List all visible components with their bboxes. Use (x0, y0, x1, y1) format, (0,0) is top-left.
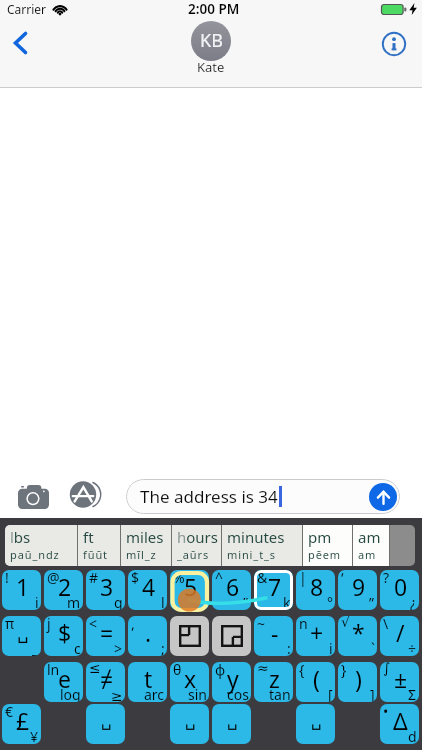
staticText: √ (341, 616, 350, 630)
staticText: ␣ (227, 710, 238, 730)
staticText: cos (227, 685, 249, 702)
staticText: ␣ (17, 622, 29, 643)
staticText: tan (269, 685, 291, 702)
button[interactable]: ~ (254, 616, 293, 656)
button[interactable]: √ (338, 616, 377, 656)
button[interactable]: Camera (18, 485, 49, 509)
staticText: n (299, 616, 308, 633)
staticText: ” (243, 593, 249, 610)
staticText: # (89, 570, 99, 587)
button[interactable]: % (170, 570, 209, 610)
staticText: Σ (408, 685, 417, 702)
button[interactable]: ‘ (338, 570, 377, 610)
staticText: 7 (268, 571, 282, 602)
button[interactable]: ␣ (212, 704, 251, 744)
button[interactable]: The address is 34 (126, 479, 400, 514)
staticText: x (184, 663, 197, 694)
button[interactable]: ^ (212, 570, 251, 610)
button[interactable]: ? (380, 570, 419, 610)
button[interactable]: @ (44, 570, 83, 610)
button[interactable]: Apps (62, 476, 110, 512)
button[interactable]: | (296, 570, 335, 610)
button[interactable]: # (86, 570, 125, 610)
staticText: ‘ (341, 570, 344, 587)
staticText: 2 (58, 571, 72, 602)
staticText: - (271, 617, 279, 648)
button[interactable]: Send (369, 483, 397, 511)
staticText: ÷ (408, 639, 417, 656)
staticText: = (100, 617, 114, 648)
staticText: ~ (257, 616, 266, 633)
staticText: t (144, 663, 153, 694)
staticText: 5 (184, 571, 198, 602)
staticText: z (269, 663, 280, 694)
button[interactable]: minutes (222, 525, 302, 566)
button[interactable]: • (380, 704, 419, 744)
button[interactable]: am (353, 525, 389, 566)
button[interactable]: < (86, 616, 125, 656)
staticText: ≈ (257, 662, 269, 676)
staticText: mini_t_s (227, 547, 276, 562)
button[interactable]: miles (121, 525, 171, 566)
button[interactable]: Details (378, 28, 410, 60)
staticText: k (283, 593, 291, 610)
staticText: hours (177, 527, 218, 547)
staticText: 6 (226, 571, 240, 602)
button[interactable]: ∫ (380, 662, 419, 702)
button[interactable] (170, 616, 209, 656)
button[interactable]: € (2, 704, 41, 744)
button[interactable]: ln (44, 662, 83, 702)
button[interactable]: θ (170, 662, 209, 702)
staticText: / (396, 617, 405, 648)
staticText: ft (83, 527, 94, 547)
button[interactable]: $ (128, 570, 167, 610)
button[interactable]: pm (303, 525, 352, 566)
staticText: i (329, 639, 333, 656)
button[interactable]: & (254, 570, 293, 610)
staticText: ¥ (30, 727, 39, 744)
button[interactable]: ␣ (296, 704, 335, 744)
staticText: | (299, 570, 307, 587)
button[interactable]: ! (2, 570, 41, 610)
button[interactable]: ft (78, 525, 120, 566)
button[interactable]: KB (191, 21, 231, 79)
button[interactable]: lbs (5, 525, 77, 566)
staticText: 9 (352, 571, 366, 602)
button[interactable]: ␣ (170, 704, 209, 744)
staticText: pm (308, 527, 332, 547)
button[interactable]: j (44, 616, 83, 656)
staticText: ^ (215, 570, 224, 587)
button[interactable]: { (296, 662, 335, 702)
button[interactable]: } (338, 662, 377, 702)
staticText: : (287, 639, 291, 656)
staticText: y (227, 663, 239, 694)
staticText: ln (47, 662, 60, 679)
staticText: % (173, 570, 185, 587)
staticText: , (131, 616, 135, 633)
button[interactable]: ≤ (86, 662, 125, 702)
staticText: am (358, 547, 377, 562)
staticText: pēem (308, 547, 342, 562)
staticText: £ (16, 705, 30, 736)
staticText: ° (327, 593, 333, 610)
staticText: arc (144, 685, 165, 702)
button[interactable]: ≈ (254, 662, 293, 702)
staticText: ≥ (111, 688, 123, 702)
staticText: 3 (100, 571, 114, 602)
button[interactable]: ␣ (86, 704, 125, 744)
button[interactable]: Back (1, 24, 39, 62)
staticText: . (145, 617, 152, 648)
button[interactable]: t (128, 662, 167, 702)
button[interactable]: \ (380, 616, 419, 656)
button[interactable] (212, 616, 251, 656)
staticText: 4 (142, 571, 156, 602)
staticText: 0 (394, 571, 408, 602)
button[interactable]: π (2, 616, 41, 656)
staticText: 8 (310, 571, 324, 602)
staticText: ( (313, 663, 320, 694)
button[interactable]: φ (212, 662, 251, 702)
button[interactable]: n (296, 616, 335, 656)
staticText: ¿ (410, 593, 417, 610)
button[interactable]: hours (172, 525, 221, 566)
button[interactable]: , (128, 616, 167, 656)
